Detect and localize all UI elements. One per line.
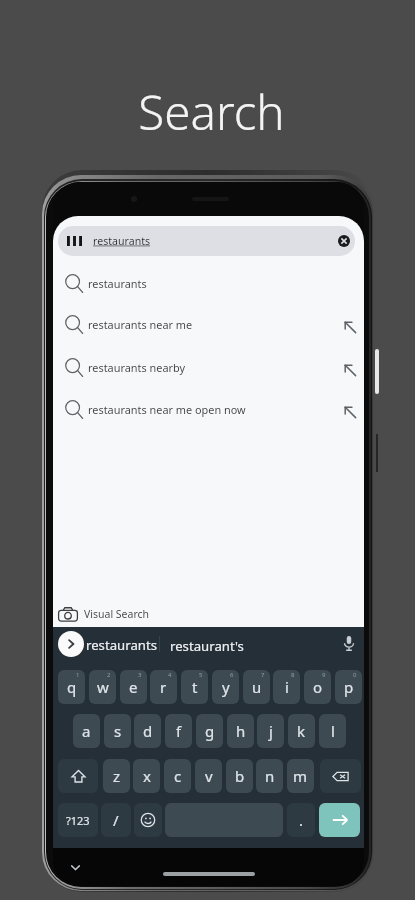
staticText: restaurants	[88, 276, 147, 291]
button[interactable]: Shift	[58, 759, 98, 793]
staticText: restaurants near me	[88, 317, 193, 332]
button[interactable]: restaurants near me open now	[53, 387, 364, 429]
button[interactable]: n	[256, 759, 283, 793]
staticText: o	[313, 677, 323, 697]
button[interactable]: Voice input	[339, 633, 359, 653]
staticText: h	[236, 721, 246, 741]
staticText: i	[285, 677, 289, 697]
staticText: f	[176, 721, 182, 741]
staticText: 6	[230, 671, 234, 679]
button[interactable]: q	[58, 670, 85, 704]
staticText: Search	[4, 79, 415, 144]
staticText: q	[67, 677, 77, 697]
button[interactable]: More suggestions	[58, 631, 84, 657]
button[interactable]: k	[288, 714, 315, 748]
staticText: restaurants nearby	[88, 360, 186, 375]
button[interactable]: restaurants	[53, 261, 364, 303]
button[interactable]: j	[257, 714, 284, 748]
staticText: 3	[138, 671, 142, 679]
staticText: 5	[199, 671, 203, 679]
button[interactable]: b	[226, 759, 253, 793]
staticText: 7	[261, 671, 265, 679]
button[interactable]: Visual Search	[53, 601, 364, 627]
button[interactable]: u	[243, 670, 270, 704]
button[interactable]: /	[101, 803, 131, 837]
button[interactable]: y	[212, 670, 239, 704]
staticText: ?123	[66, 813, 90, 828]
staticText: .	[299, 810, 304, 830]
staticText: 2	[107, 671, 111, 679]
staticText: x	[143, 766, 151, 786]
button[interactable]: Backspace	[320, 759, 361, 793]
staticText: v	[205, 766, 213, 786]
button[interactable]: p	[335, 670, 362, 704]
button[interactable]: Clear	[338, 235, 350, 247]
staticText: w	[97, 677, 109, 697]
staticText: c	[174, 766, 182, 786]
staticText: 1	[76, 671, 80, 679]
button[interactable]: Emoji	[134, 803, 162, 837]
button[interactable]: z	[103, 759, 130, 793]
staticText: 8	[291, 671, 295, 679]
staticText: n	[265, 766, 275, 786]
button[interactable]: g	[196, 714, 223, 748]
button[interactable]: i	[273, 670, 300, 704]
staticText: b	[235, 766, 245, 786]
staticText: u	[252, 677, 262, 697]
button[interactable]: Hide keyboard	[69, 861, 82, 874]
staticText: 0	[353, 671, 357, 679]
staticText: m	[293, 766, 308, 786]
staticText: 9	[322, 671, 326, 679]
button[interactable]: o	[304, 670, 331, 704]
button[interactable]: restaurant's	[170, 637, 244, 655]
staticText: Visual Search	[84, 607, 150, 621]
button[interactable]: m	[287, 759, 314, 793]
button[interactable]: .	[287, 803, 315, 837]
button[interactable]: x	[133, 759, 160, 793]
staticText: 4	[168, 671, 172, 679]
staticText: k	[297, 721, 306, 741]
staticText: z	[113, 766, 121, 786]
button[interactable]: Enter	[319, 803, 360, 837]
button[interactable]: v	[195, 759, 222, 793]
staticText: j	[269, 721, 273, 741]
button[interactable]: e	[120, 670, 147, 704]
button[interactable]: w	[89, 670, 116, 704]
staticText: g	[205, 721, 215, 741]
button[interactable]: s	[104, 714, 131, 748]
staticText: e	[129, 677, 138, 697]
staticText: restaurants	[93, 234, 151, 248]
button[interactable]: restaurants	[58, 226, 355, 256]
staticText: a	[82, 721, 91, 741]
button[interactable]: restaurants nearby	[53, 345, 364, 387]
staticText: d	[143, 721, 153, 741]
button[interactable]: l	[319, 714, 346, 748]
button[interactable]: ?123	[58, 803, 98, 837]
staticText: y	[222, 677, 230, 697]
staticText: s	[114, 721, 122, 741]
button[interactable]: c	[164, 759, 191, 793]
button[interactable]: a	[73, 714, 100, 748]
button[interactable]: d	[134, 714, 161, 748]
button[interactable]: restaurants	[86, 636, 158, 654]
staticText: /	[113, 810, 119, 830]
staticText: p	[344, 677, 354, 697]
staticText: l	[331, 721, 335, 741]
staticText: t	[192, 677, 198, 697]
staticText: restaurants near me open now	[88, 402, 246, 417]
button[interactable]: r	[150, 670, 177, 704]
staticText: r	[160, 677, 167, 697]
button[interactable]: restaurants near me	[53, 302, 364, 344]
button[interactable]: t	[181, 670, 208, 704]
button[interactable]: h	[227, 714, 254, 748]
button[interactable]: f	[165, 714, 192, 748]
